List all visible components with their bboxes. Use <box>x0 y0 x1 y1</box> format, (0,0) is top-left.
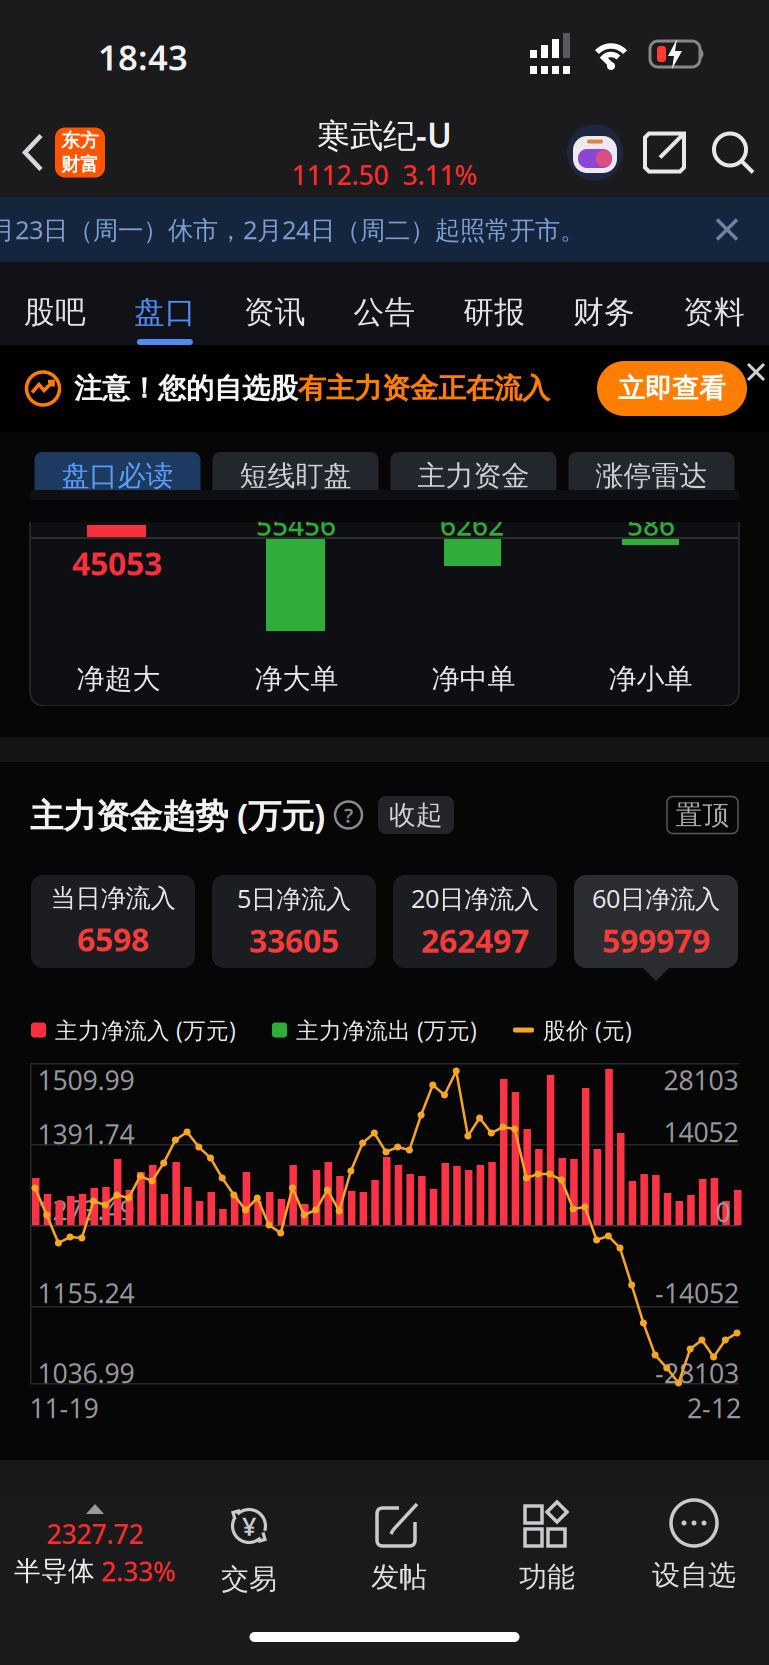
staticText: 置顶 <box>675 799 729 831</box>
staticText: 5日净流入 <box>237 881 351 915</box>
staticText: 资料 <box>683 293 745 331</box>
staticText: 资讯 <box>244 293 306 331</box>
button[interactable]: 当日净流入 <box>31 875 195 968</box>
staticText: 涨停雷达 <box>595 459 707 493</box>
button[interactable]: 研报 <box>439 262 549 345</box>
staticText: 262497 <box>421 919 529 962</box>
staticText: 14052 <box>663 1114 738 1150</box>
staticText: 28103 <box>663 1062 738 1098</box>
staticText: 599979 <box>602 919 710 962</box>
staticText: ¥ <box>242 1509 256 1543</box>
staticText: 1509.99 <box>37 1062 134 1098</box>
staticText: 主力资金趋势 (万元) <box>30 793 325 837</box>
staticText: 功能 <box>519 1560 575 1594</box>
staticText: 586 <box>627 506 675 544</box>
button[interactable]: 设自选 <box>0 1496 769 1665</box>
staticText: 18:43 <box>98 34 188 80</box>
staticText: 11-19 <box>29 1390 98 1426</box>
button[interactable]: 涨停雷达 <box>568 452 734 500</box>
button[interactable]: 短线盯盘 <box>212 452 378 500</box>
staticText: ? <box>344 802 353 828</box>
staticText: 立即查看 <box>618 372 726 405</box>
button[interactable]: 关闭横幅 <box>747 361 769 381</box>
staticText: 6598 <box>77 918 149 960</box>
button[interactable]: 立即查看 <box>597 361 747 416</box>
button[interactable]: 帮助 <box>325 801 362 828</box>
staticText: 股吧 <box>24 293 86 331</box>
staticText: 半导体 <box>14 1555 95 1587</box>
staticText: 20日净流入 <box>411 881 539 915</box>
button[interactable]: 财务 <box>549 262 659 345</box>
staticText: 1036.99 <box>37 1355 134 1391</box>
button[interactable]: Back <box>0 133 44 171</box>
button[interactable]: 发帖 <box>0 1496 769 1665</box>
button[interactable]: 资料 <box>659 262 769 345</box>
button[interactable]: 半导体板块 <box>0 1496 190 1614</box>
staticText: 财务 <box>573 293 635 331</box>
button[interactable]: ¥ <box>0 1496 769 1665</box>
staticText: 33605 <box>249 919 339 962</box>
staticText: 有主力资金正在流入 <box>298 371 550 406</box>
staticText: 1273.49 <box>37 1192 134 1228</box>
staticText: 1112.50 <box>291 157 388 192</box>
staticText: 股价 (元) <box>543 1015 632 1045</box>
staticText: 净超大 <box>76 662 160 696</box>
staticText: 注意！您的自选股 <box>74 371 298 406</box>
staticText: 交易 <box>221 1562 277 1596</box>
button[interactable]: 60日净流入 <box>574 875 738 968</box>
staticText: 公告 <box>353 293 415 331</box>
staticText: 主力净流入 (万元) <box>55 1015 236 1045</box>
button[interactable]: Share <box>623 130 687 174</box>
staticText: 收起 <box>389 799 443 831</box>
button[interactable]: 东方财富 <box>44 127 105 177</box>
button[interactable]: 功能 <box>0 1496 769 1665</box>
button[interactable]: 资讯 <box>220 262 330 345</box>
button[interactable]: 盘口 <box>110 262 220 345</box>
staticText: 净中单 <box>431 662 515 696</box>
staticText: 寒武纪-U <box>317 113 452 157</box>
staticText: -28103 <box>655 1355 739 1391</box>
staticText: 主力资金 <box>417 459 529 493</box>
staticText: 60日净流入 <box>592 881 720 915</box>
staticText: 3.11% <box>402 157 477 192</box>
staticText: 盘口 <box>134 293 196 331</box>
staticText: 净大单 <box>254 662 338 696</box>
staticText: 55456 <box>256 506 336 544</box>
staticText: 净小单 <box>608 662 692 696</box>
staticText: 当日净流入 <box>50 883 175 914</box>
staticText: 45053 <box>72 542 162 584</box>
staticText: 2-12 <box>687 1390 741 1426</box>
button[interactable]: 20日净流入 <box>393 875 557 968</box>
staticText: 月23日（周一）休市，2月24日（周二）起照常开市。 <box>0 213 585 246</box>
staticText: 6262 <box>440 506 504 544</box>
staticText: 盘口必读 <box>61 459 173 493</box>
staticText: 2327.72 <box>46 1516 143 1551</box>
staticText: 财富 <box>61 153 99 176</box>
staticText: 设自选 <box>652 1558 736 1592</box>
staticText: 主力净流出 (万元) <box>296 1015 477 1045</box>
staticText: 短线盯盘 <box>239 459 351 493</box>
button[interactable]: 主力资金 <box>390 452 556 500</box>
button[interactable]: 公告 <box>330 262 439 345</box>
staticText: 研报 <box>463 293 525 331</box>
button[interactable]: AI助手 <box>567 124 623 180</box>
staticText: 东方 <box>61 129 99 152</box>
staticText: -14052 <box>655 1275 739 1311</box>
button[interactable]: 5日净流入 <box>212 875 376 968</box>
button[interactable]: 收起 <box>362 796 454 834</box>
button[interactable]: 股吧 <box>0 262 110 345</box>
staticText: 1155.24 <box>37 1275 134 1311</box>
staticText: 0 <box>715 1194 730 1230</box>
button[interactable]: Search <box>687 130 769 174</box>
button[interactable]: 盘口必读 <box>34 452 200 500</box>
staticText: 1391.74 <box>37 1116 134 1152</box>
button[interactable]: 关闭 <box>715 217 769 241</box>
staticText: 发帖 <box>371 1560 427 1594</box>
button[interactable]: 置顶 <box>667 796 769 833</box>
staticText: 2.33% <box>101 1553 176 1589</box>
